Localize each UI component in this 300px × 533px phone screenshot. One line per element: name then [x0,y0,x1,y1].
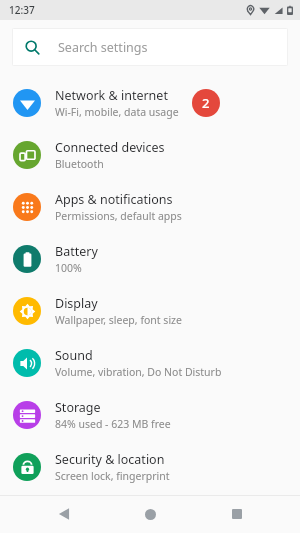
staticText: 100% [55,261,82,275]
staticText: Permissions, default apps [55,209,182,223]
button[interactable]: Network & internet [0,77,300,129]
staticText: Sound [55,347,93,364]
staticText: Search settings [58,39,148,56]
button[interactable]: Apps & notifications [0,181,300,233]
button[interactable]: Storage [0,389,300,441]
staticText: 2 [202,94,210,112]
staticText: Bluetooth [55,157,104,171]
button[interactable]: Security & location [0,441,300,493]
staticText: Apps & notifications [55,191,173,208]
staticText: 12:37 [9,3,35,17]
staticText: 84% used - 623 MB free [55,417,171,431]
staticText: Connected devices [55,139,165,156]
button[interactable]: Recent apps [214,495,260,533]
staticText: Screen lock, fingerprint [55,469,170,483]
button[interactable]: Back [41,495,87,533]
button[interactable]: Search settings [12,28,288,66]
staticText: Display [55,295,98,312]
staticText: Wi-Fi, mobile, data usage [55,105,179,119]
staticText: Volume, vibration, Do Not Disturb [55,365,222,379]
button[interactable]: Display [0,285,300,337]
staticText: Security & location [55,451,165,468]
staticText: Battery [55,243,98,260]
button[interactable]: Sound [0,337,300,389]
staticText: Network & internet [55,87,168,104]
staticText: Storage [55,399,101,416]
button[interactable]: Connected devices [0,129,300,181]
button[interactable]: Home [127,495,173,533]
staticText: Wallpaper, sleep, font size [55,313,182,327]
button[interactable]: Battery [0,233,300,285]
